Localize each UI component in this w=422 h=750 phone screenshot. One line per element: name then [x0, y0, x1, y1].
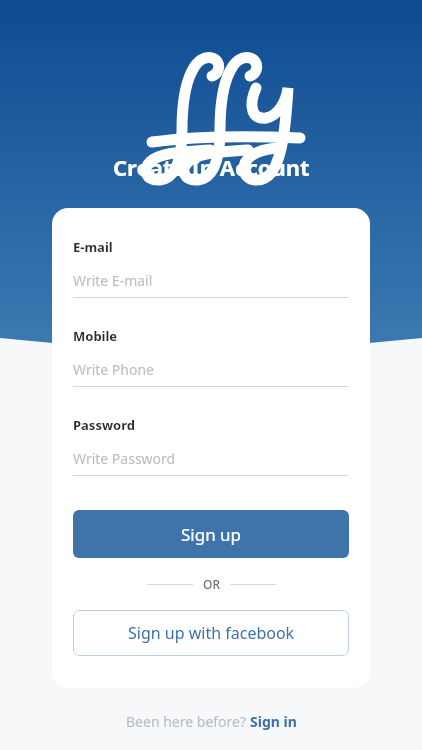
- staticText: Write Phone: [73, 360, 155, 379]
- staticText: Mobile: [73, 327, 118, 345]
- staticText: Password: [73, 416, 135, 434]
- staticText: Sign up with facebook: [128, 622, 295, 644]
- button[interactable]: Sign up with facebook: [73, 610, 349, 656]
- staticText: OR: [203, 576, 220, 592]
- staticText: Been here before?: [126, 712, 250, 731]
- staticText: Create In Account: [113, 152, 310, 182]
- other: ffy logo: [136, 44, 286, 140]
- staticText: E-mail: [73, 238, 113, 256]
- button[interactable]: Been here before?: [126, 712, 297, 731]
- button[interactable]: Write Phone: [73, 360, 349, 387]
- button[interactable]: Sign up: [73, 510, 349, 558]
- button[interactable]: Write Password: [73, 449, 349, 476]
- staticText: Write E-mail: [73, 271, 153, 290]
- staticText: Sign up: [181, 523, 242, 546]
- staticText: Sign in: [250, 712, 297, 731]
- staticText: Write Password: [73, 449, 176, 468]
- button[interactable]: Write E-mail: [73, 271, 349, 298]
